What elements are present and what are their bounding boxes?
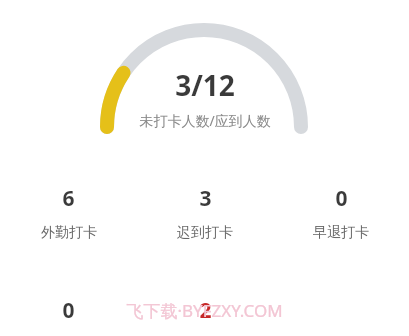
- button[interactable]: 0: [273, 184, 409, 242]
- staticText: 0: [62, 296, 75, 325]
- button[interactable]: 未打卡人数比例: [0, 0, 409, 140]
- button[interactable]: 0: [0, 296, 137, 336]
- staticText: 未打卡人数/应到人数: [139, 111, 271, 130]
- staticText: 迟到打卡: [177, 224, 233, 242]
- staticText: 2: [199, 296, 212, 325]
- button[interactable]: 3: [137, 184, 273, 242]
- staticText: 6: [62, 184, 75, 213]
- staticText: 外勤打卡: [41, 224, 97, 242]
- staticText: 飞下载·BYFZXY.COM: [126, 299, 283, 322]
- staticText: 3: [199, 184, 212, 213]
- button[interactable]: 2: [137, 296, 273, 336]
- staticText: 0: [335, 184, 348, 213]
- staticText: 3/12: [175, 66, 235, 104]
- staticText: 早退打卡: [313, 224, 369, 242]
- button[interactable]: 6: [0, 184, 137, 242]
